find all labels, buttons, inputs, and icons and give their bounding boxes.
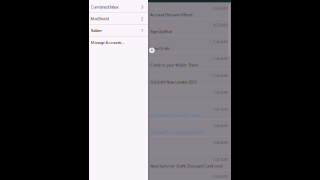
- button[interactable]: Mailer: [148, 53, 231, 69]
- staticText: Get It All Now London 2013: [150, 79, 196, 84]
- staticText: 1:43 AM: [213, 56, 228, 61]
- staticText: New Order: [150, 46, 170, 51]
- staticText: Sign Up Mail: [150, 29, 172, 34]
- staticText: MailShield: [90, 16, 108, 21]
- staticText: 1:47 AM: [213, 157, 228, 162]
- staticText: 3: [141, 4, 143, 9]
- button[interactable]: Manage Accounts...: [89, 37, 148, 48]
- button[interactable]: [148, 103, 231, 120]
- button[interactable]: [148, 137, 231, 153]
- button[interactable]: [148, 153, 231, 170]
- staticText: 1:43 AM: [213, 39, 228, 44]
- button[interactable]: Shop: [148, 36, 231, 53]
- staticText: Get Test Get Go on Test Team: [150, 113, 201, 118]
- button[interactable]: Support: [148, 2, 231, 19]
- staticText: 1:47 AM: [213, 106, 228, 112]
- staticText: 1:43 AM: [213, 73, 228, 78]
- button[interactable]: [148, 120, 231, 137]
- staticText: Get Test Time Go on Get Team: [150, 130, 203, 135]
- button[interactable]: Accounts: [148, 19, 231, 36]
- button[interactable]: Events: [148, 69, 231, 86]
- staticText: Account Password Reset: [150, 12, 192, 17]
- staticText: Manage Accounts...: [90, 40, 124, 45]
- staticText: 1: [141, 28, 143, 33]
- staticText: 1:42 AM: [213, 173, 228, 179]
- button[interactable]: [148, 170, 231, 180]
- button[interactable]: Combined Inbox: [89, 1, 148, 13]
- staticText: New Summer Outfit, Discount Confirmed: [150, 163, 222, 168]
- staticText: Confirm your Mailer Them: [150, 62, 198, 68]
- staticText: Rubber: [90, 28, 102, 33]
- staticText: 1:43 AM: [213, 140, 228, 145]
- button[interactable]: MailShield: [89, 13, 148, 25]
- staticText: 1:43 AM: [213, 123, 228, 128]
- button[interactable]: [148, 86, 231, 103]
- staticText: 2: [141, 16, 143, 21]
- staticText: 1:43 AM: [213, 89, 228, 95]
- staticText: 4:53 AM: [213, 22, 228, 28]
- staticText: 4:53 AM: [213, 5, 228, 11]
- button[interactable]: Rubber: [89, 25, 148, 37]
- staticText: Combined Inbox: [90, 4, 118, 9]
